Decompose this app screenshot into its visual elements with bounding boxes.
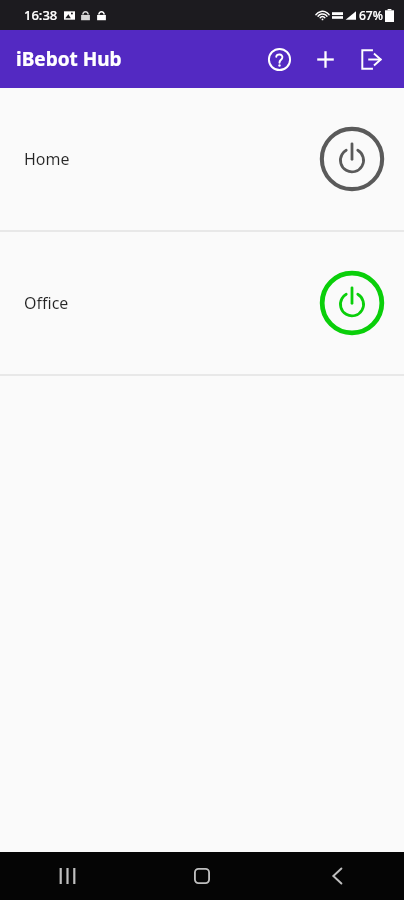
button[interactable]: Home — [172, 852, 232, 900]
button[interactable]: Recent apps — [37, 852, 97, 900]
button[interactable]: Turn off Office — [319, 270, 385, 336]
staticText: Office — [24, 292, 69, 314]
button[interactable]: Help — [256, 36, 302, 82]
staticText: iBebot Hub — [16, 46, 122, 72]
button[interactable]: Back — [307, 852, 367, 900]
button[interactable]: Home — [0, 88, 404, 230]
staticText: Home — [24, 148, 70, 170]
staticText: 67% — [359, 7, 383, 23]
staticText: 16:38 — [24, 6, 58, 24]
button[interactable]: Office — [0, 232, 404, 374]
button[interactable]: Log out — [348, 36, 394, 82]
button[interactable]: Add device — [302, 36, 348, 82]
button[interactable]: Turn on Home — [319, 126, 385, 192]
